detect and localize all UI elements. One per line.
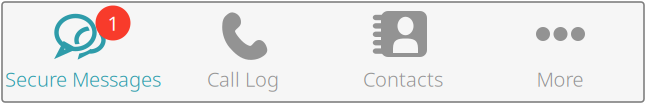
button[interactable]: More xyxy=(483,2,643,102)
staticText: Secure Messages xyxy=(5,66,161,92)
button[interactable]: Call Log xyxy=(163,2,323,102)
staticText: More xyxy=(536,66,583,92)
staticText: 1 xyxy=(107,10,118,36)
button[interactable]: 1 xyxy=(3,2,163,102)
button[interactable]: Contacts xyxy=(323,2,483,102)
staticText: Call Log xyxy=(207,66,279,92)
staticText: Contacts xyxy=(363,66,443,92)
